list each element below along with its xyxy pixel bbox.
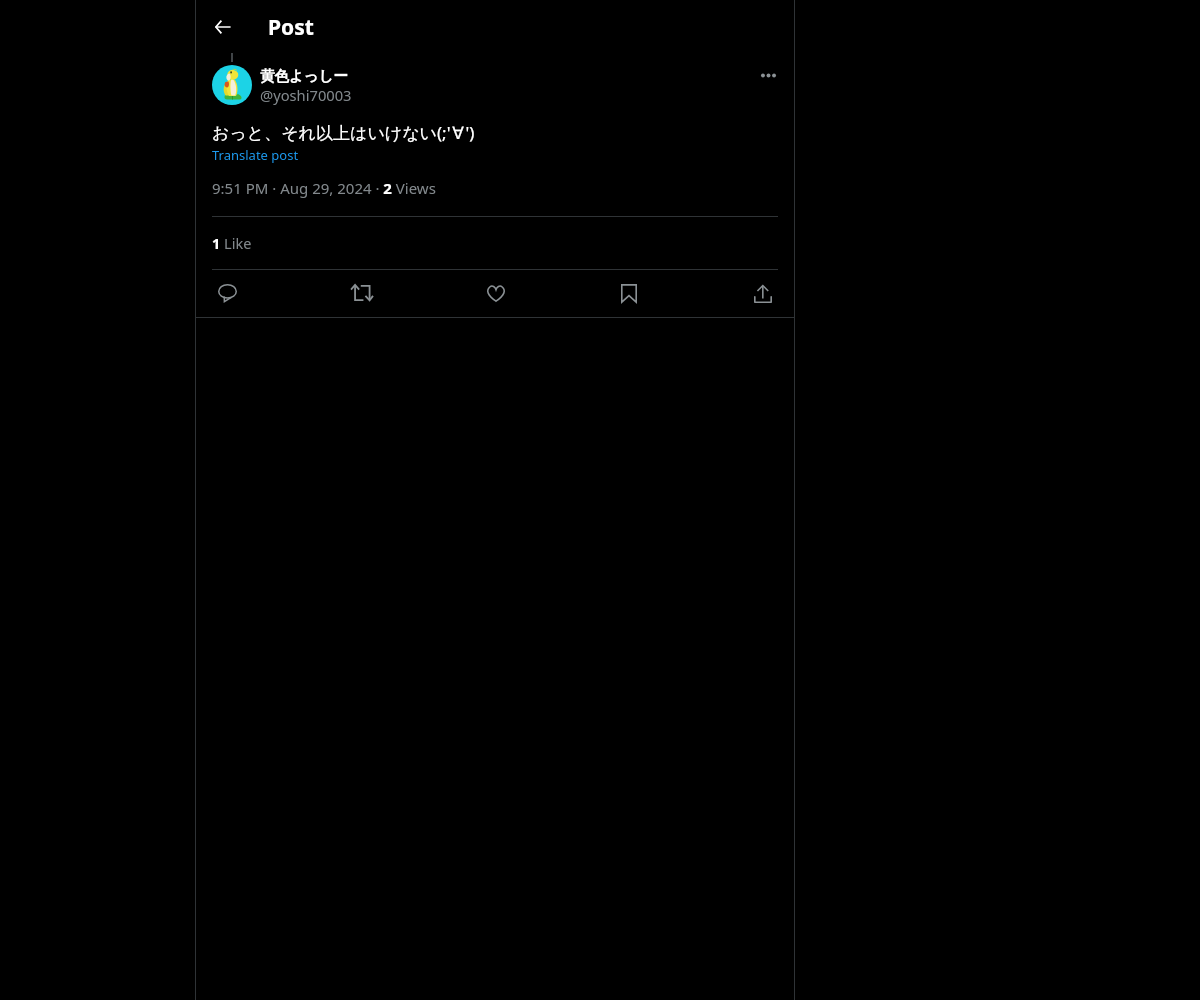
staticText: 9:51 PM · Aug 29, 2024 · 2 Views: [212, 178, 436, 198]
staticText: 黄色よっしー: [260, 67, 349, 85]
button[interactable]: More options: [754, 61, 782, 89]
staticText: おっと、それ以上はいけない(;' ∀ '): [212, 121, 475, 144]
button[interactable]: Share: [747, 274, 778, 314]
button[interactable]: Profile picture: [212, 65, 252, 105]
button[interactable]: Like: [480, 274, 511, 314]
button[interactable]: Repost: [346, 274, 377, 314]
staticText: 1 Like: [212, 233, 252, 253]
button[interactable]: Reply: [212, 274, 243, 314]
staticText: @yoshi70003: [260, 85, 352, 105]
button[interactable]: Translate post: [212, 146, 299, 164]
button[interactable]: Back: [206, 10, 240, 44]
staticText: Post: [268, 13, 314, 42]
button[interactable]: Bookmark: [613, 274, 644, 314]
staticText: Translate post: [212, 146, 299, 164]
button[interactable]: 黄色よっしー: [260, 67, 750, 105]
